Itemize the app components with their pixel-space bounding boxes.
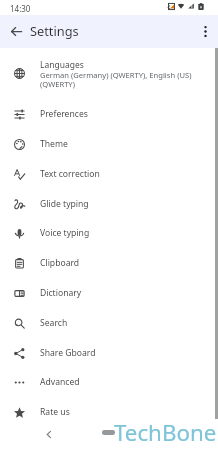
staticText: TechBone [114, 417, 217, 447]
staticText: Search [40, 317, 68, 329]
button[interactable]: Rate us [0, 397, 218, 427]
staticText: 14:30 [10, 3, 31, 14]
staticText: Share Gboard [40, 347, 96, 359]
button[interactable]: Voice typing [0, 218, 218, 248]
staticText: Languages [40, 59, 84, 71]
button[interactable]: Preferences [0, 99, 218, 129]
staticText: Preferences [40, 108, 88, 120]
button[interactable]: Back [40, 426, 56, 442]
staticText: Text correction [40, 168, 100, 180]
button[interactable]: Clipboard [0, 248, 218, 278]
button[interactable]: Search [0, 308, 218, 338]
staticText: Rate us [40, 406, 70, 418]
staticText: Advanced [40, 376, 80, 388]
staticText: German (Germany) (QWERTY), English (US) … [40, 70, 193, 89]
button[interactable]: Theme [0, 129, 218, 159]
button[interactable]: Navigate up [6, 21, 27, 42]
button[interactable]: Share Gboard [0, 338, 218, 368]
button[interactable]: Dictionary [0, 278, 218, 308]
staticText: Theme [40, 138, 68, 150]
staticText: Glide typing [40, 198, 89, 210]
button[interactable]: Text correction [0, 159, 218, 189]
button[interactable]: Languages [0, 48, 218, 99]
staticText: Voice typing [40, 227, 90, 239]
staticText: Dictionary [40, 287, 82, 299]
staticText: Clipboard [40, 257, 80, 269]
staticText: Settings [30, 22, 79, 39]
button[interactable]: Glide typing [0, 189, 218, 219]
button[interactable]: Advanced [0, 367, 218, 397]
button[interactable]: More options [195, 21, 216, 42]
